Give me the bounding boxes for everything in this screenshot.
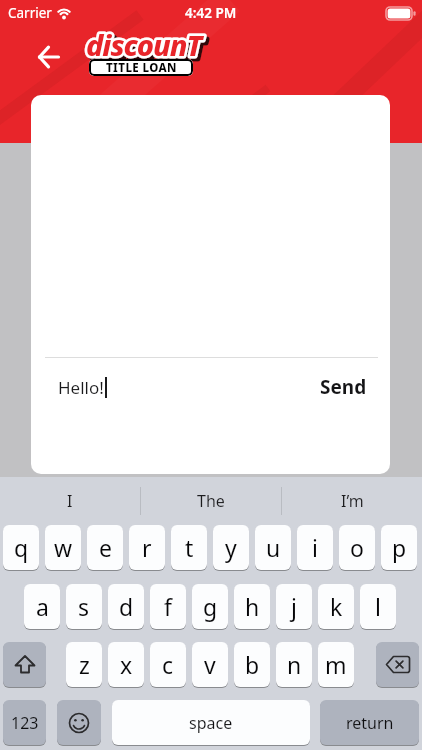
staticText: discounT (86, 25, 202, 64)
button[interactable]: I’m (282, 477, 422, 525)
button[interactable]: h (234, 584, 270, 629)
button[interactable]: r (129, 525, 165, 570)
staticText: o (350, 532, 364, 563)
staticText: j (291, 591, 297, 622)
button[interactable]: o (339, 525, 375, 570)
staticText: b (245, 649, 260, 680)
button[interactable]: return (320, 700, 419, 745)
button[interactable]: a (24, 584, 60, 629)
staticText: g (203, 591, 218, 622)
staticText: discounT (89, 28, 205, 67)
button[interactable]: k (318, 584, 354, 629)
staticText: s (78, 591, 90, 622)
staticText: z (79, 649, 90, 680)
button[interactable] (3, 642, 46, 687)
button[interactable]: p (381, 525, 417, 570)
staticText: f (164, 591, 172, 622)
button[interactable]: c (150, 642, 186, 687)
staticText: c (162, 649, 174, 680)
staticText: I (67, 490, 73, 512)
button[interactable]: w (45, 525, 81, 570)
staticText: 4:42 PM (185, 4, 237, 22)
button[interactable]: b (234, 642, 270, 687)
staticText: n (287, 649, 302, 680)
button[interactable] (28, 36, 70, 78)
staticText: w (54, 532, 73, 563)
button[interactable]: n (276, 642, 312, 687)
staticText: h (245, 591, 260, 622)
staticText: Hello! (58, 376, 104, 399)
staticText: Carrier (8, 4, 52, 22)
staticText: t (185, 532, 194, 563)
button[interactable]: s (66, 584, 102, 629)
button[interactable]: q (3, 525, 39, 570)
staticText: k (330, 591, 343, 622)
staticText: space (189, 712, 233, 734)
staticText: v (204, 649, 216, 680)
button[interactable]: z (66, 642, 102, 687)
staticText: The (197, 490, 225, 512)
button[interactable]: The (141, 477, 281, 525)
button[interactable]: u (255, 525, 291, 570)
button[interactable]: e (87, 525, 123, 570)
button[interactable]: j (276, 584, 312, 629)
button[interactable]: v (192, 642, 228, 687)
button[interactable]: g (192, 584, 228, 629)
staticText: u (266, 532, 281, 563)
button[interactable]: I (0, 477, 140, 525)
staticText: r (142, 532, 152, 563)
staticText: discounT (89, 28, 205, 67)
button[interactable]: f (150, 584, 186, 629)
staticText: TITLE LOAN (106, 60, 177, 76)
staticText: d (119, 591, 134, 622)
staticText: y (225, 532, 237, 563)
staticText: l (375, 591, 381, 622)
button[interactable] (376, 642, 419, 687)
staticText: p (392, 532, 407, 563)
button[interactable]: 123 (3, 700, 46, 745)
staticText: e (99, 532, 112, 563)
button[interactable]: Send (309, 369, 377, 405)
staticText: 123 (11, 712, 39, 734)
staticText: return (346, 712, 394, 734)
button[interactable] (57, 700, 101, 745)
staticText: q (14, 532, 29, 563)
staticText: x (120, 649, 133, 680)
button[interactable]: t (171, 525, 207, 570)
button[interactable]: i (297, 525, 333, 570)
button[interactable]: m (318, 642, 354, 687)
staticText: a (36, 591, 49, 622)
staticText: i (312, 532, 318, 563)
staticText: Send (320, 374, 367, 400)
button[interactable]: x (108, 642, 144, 687)
button[interactable]: d (108, 584, 144, 629)
button[interactable]: l (360, 584, 396, 629)
staticText: I’m (341, 490, 364, 512)
staticText: m (325, 649, 347, 680)
button[interactable]: space (112, 700, 310, 745)
button[interactable]: y (213, 525, 249, 570)
staticText: discounT (86, 25, 202, 64)
